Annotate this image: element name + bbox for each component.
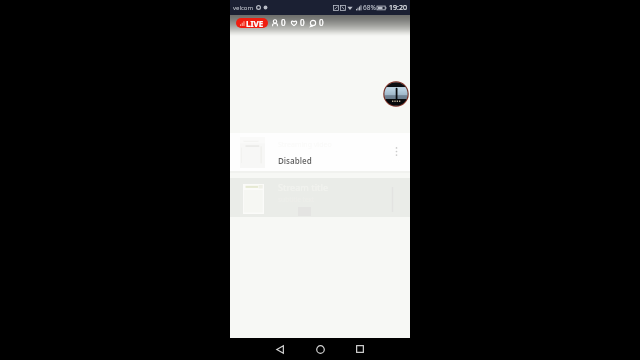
staticText: 68%: [363, 3, 376, 12]
staticText: 0: [281, 17, 286, 28]
button[interactable]: Home: [312, 341, 328, 357]
button[interactable]: LIVE: [236, 18, 268, 28]
staticText: velcom: [233, 4, 254, 12]
button[interactable]: Streaming video: [230, 133, 410, 171]
button[interactable]: Back: [272, 341, 288, 357]
staticText: 0: [300, 17, 305, 28]
staticText: Disabled: [278, 155, 312, 166]
staticText: LIVE: [246, 18, 264, 28]
button[interactable]: Stream title: [230, 178, 410, 217]
button[interactable]: More options: [390, 145, 402, 157]
button[interactable]: Broadcaster profile: [383, 81, 409, 107]
button[interactable]: Recent apps: [352, 341, 368, 357]
staticText: 0: [319, 17, 324, 28]
staticText: 19:20: [389, 3, 407, 13]
